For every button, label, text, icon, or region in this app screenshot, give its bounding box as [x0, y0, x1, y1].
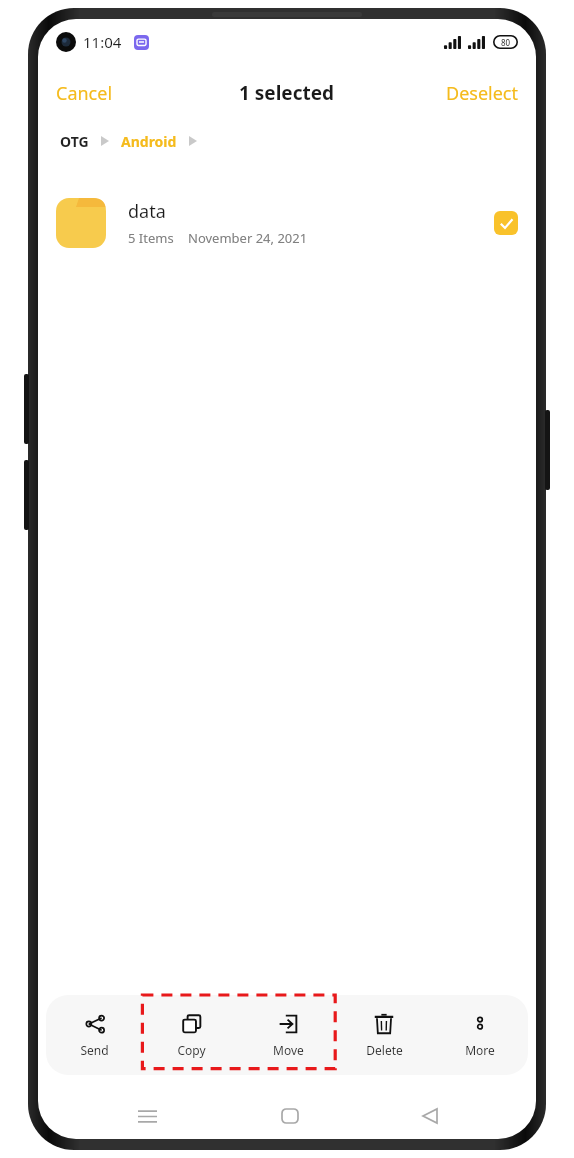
staticText: 1 selected — [239, 80, 335, 106]
staticText: Move — [273, 1042, 304, 1058]
staticText: Copy — [177, 1042, 206, 1058]
button[interactable]: Delete — [336, 995, 432, 1075]
button[interactable]: Back — [413, 1099, 447, 1133]
button[interactable]: Copy — [143, 995, 240, 1075]
staticText: November 24, 2021 — [188, 229, 308, 247]
staticText: 5 Items — [128, 229, 174, 247]
button[interactable]: Cancel — [38, 73, 131, 114]
staticText: Android — [121, 132, 177, 151]
button[interactable]: Recents — [128, 1100, 167, 1133]
button[interactable]: data — [38, 187, 536, 259]
staticText: 11:04 — [83, 32, 122, 52]
button[interactable]: Move — [240, 995, 336, 1075]
button[interactable]: Android — [119, 126, 179, 157]
staticText: data — [128, 199, 166, 224]
staticText: 80 — [501, 37, 511, 48]
button[interactable]: Send — [46, 995, 143, 1075]
button[interactable]: OTG — [58, 126, 91, 157]
button[interactable]: More — [432, 995, 528, 1075]
staticText: More — [465, 1042, 495, 1058]
staticText: Cancel — [56, 81, 113, 106]
button[interactable]: Home — [272, 1099, 308, 1133]
button[interactable]: Deselect — [428, 73, 536, 114]
button[interactable]: Selected — [494, 211, 518, 235]
staticText: Send — [80, 1042, 109, 1058]
staticText: Delete — [366, 1042, 403, 1058]
staticText: OTG — [60, 132, 89, 151]
staticText: Deselect — [446, 81, 518, 106]
